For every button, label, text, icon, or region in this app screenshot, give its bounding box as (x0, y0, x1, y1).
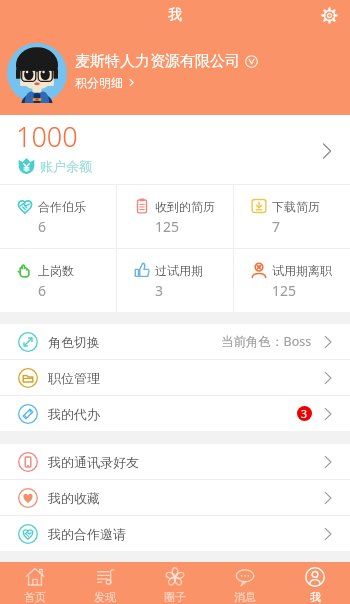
staticText: 下载简历 (272, 199, 320, 214)
staticText: 首页 (24, 590, 46, 604)
staticText: 我 (168, 6, 182, 24)
staticText: 当前角色：Boss (221, 333, 312, 350)
staticText: 我的代办 (48, 406, 100, 422)
button[interactable]: 我的代办 (0, 396, 350, 431)
staticText: 上岗数 (38, 263, 74, 278)
staticText: 收到的简历 (155, 199, 215, 214)
button[interactable]: 角色切换 (0, 324, 350, 359)
staticText: 125 (272, 281, 297, 300)
staticText: 我的通讯录好友 (48, 454, 139, 470)
button[interactable]: 我 (280, 562, 350, 604)
button[interactable]: 我的收藏 (0, 480, 350, 515)
staticText: 角色切换 (48, 334, 100, 350)
staticText: 麦斯特人力资源有限公司 (75, 52, 240, 71)
staticText: 125 (155, 217, 180, 236)
button[interactable]: 过试用期 (117, 249, 233, 312)
button[interactable]: Settings (316, 2, 342, 28)
staticText: 消息 (234, 590, 256, 604)
button[interactable]: 合作伯乐 (0, 185, 116, 248)
button[interactable]: 首页 (0, 562, 70, 604)
staticText: 合作伯乐 (38, 199, 86, 214)
button[interactable]: 积分明细 (75, 75, 136, 90)
button[interactable]: 我的通讯录好友 (0, 444, 350, 479)
staticText: 圈子 (164, 590, 186, 604)
staticText: 我的收藏 (48, 490, 100, 506)
staticText: 3 (301, 407, 308, 421)
staticText: 我 (310, 590, 321, 604)
staticText: 职位管理 (48, 370, 100, 386)
staticText: 6 (38, 281, 47, 300)
staticText: 1000 (16, 118, 78, 155)
button[interactable]: 下载简历 (234, 185, 350, 248)
button[interactable]: 圈子 (140, 562, 210, 604)
staticText: 试用期离职 (272, 263, 332, 278)
staticText: 发现 (94, 590, 116, 604)
button[interactable]: 1000 (0, 115, 350, 184)
button[interactable]: 消息 (210, 562, 280, 604)
button[interactable]: 发现 (70, 562, 140, 604)
staticText: 过试用期 (155, 263, 203, 278)
staticText: 我的合作邀请 (48, 526, 126, 542)
button[interactable]: 我的合作邀请 (0, 516, 350, 551)
button[interactable]: 上岗数 (0, 249, 116, 312)
button[interactable]: 试用期离职 (234, 249, 350, 312)
button[interactable]: 收到的简历 (117, 185, 233, 248)
staticText: 账户余额 (40, 158, 92, 174)
staticText: 3 (155, 281, 164, 300)
staticText: 积分明细 (75, 75, 123, 90)
staticText: 7 (272, 217, 281, 236)
button[interactable]: 职位管理 (0, 360, 350, 395)
staticText: 6 (38, 217, 47, 236)
